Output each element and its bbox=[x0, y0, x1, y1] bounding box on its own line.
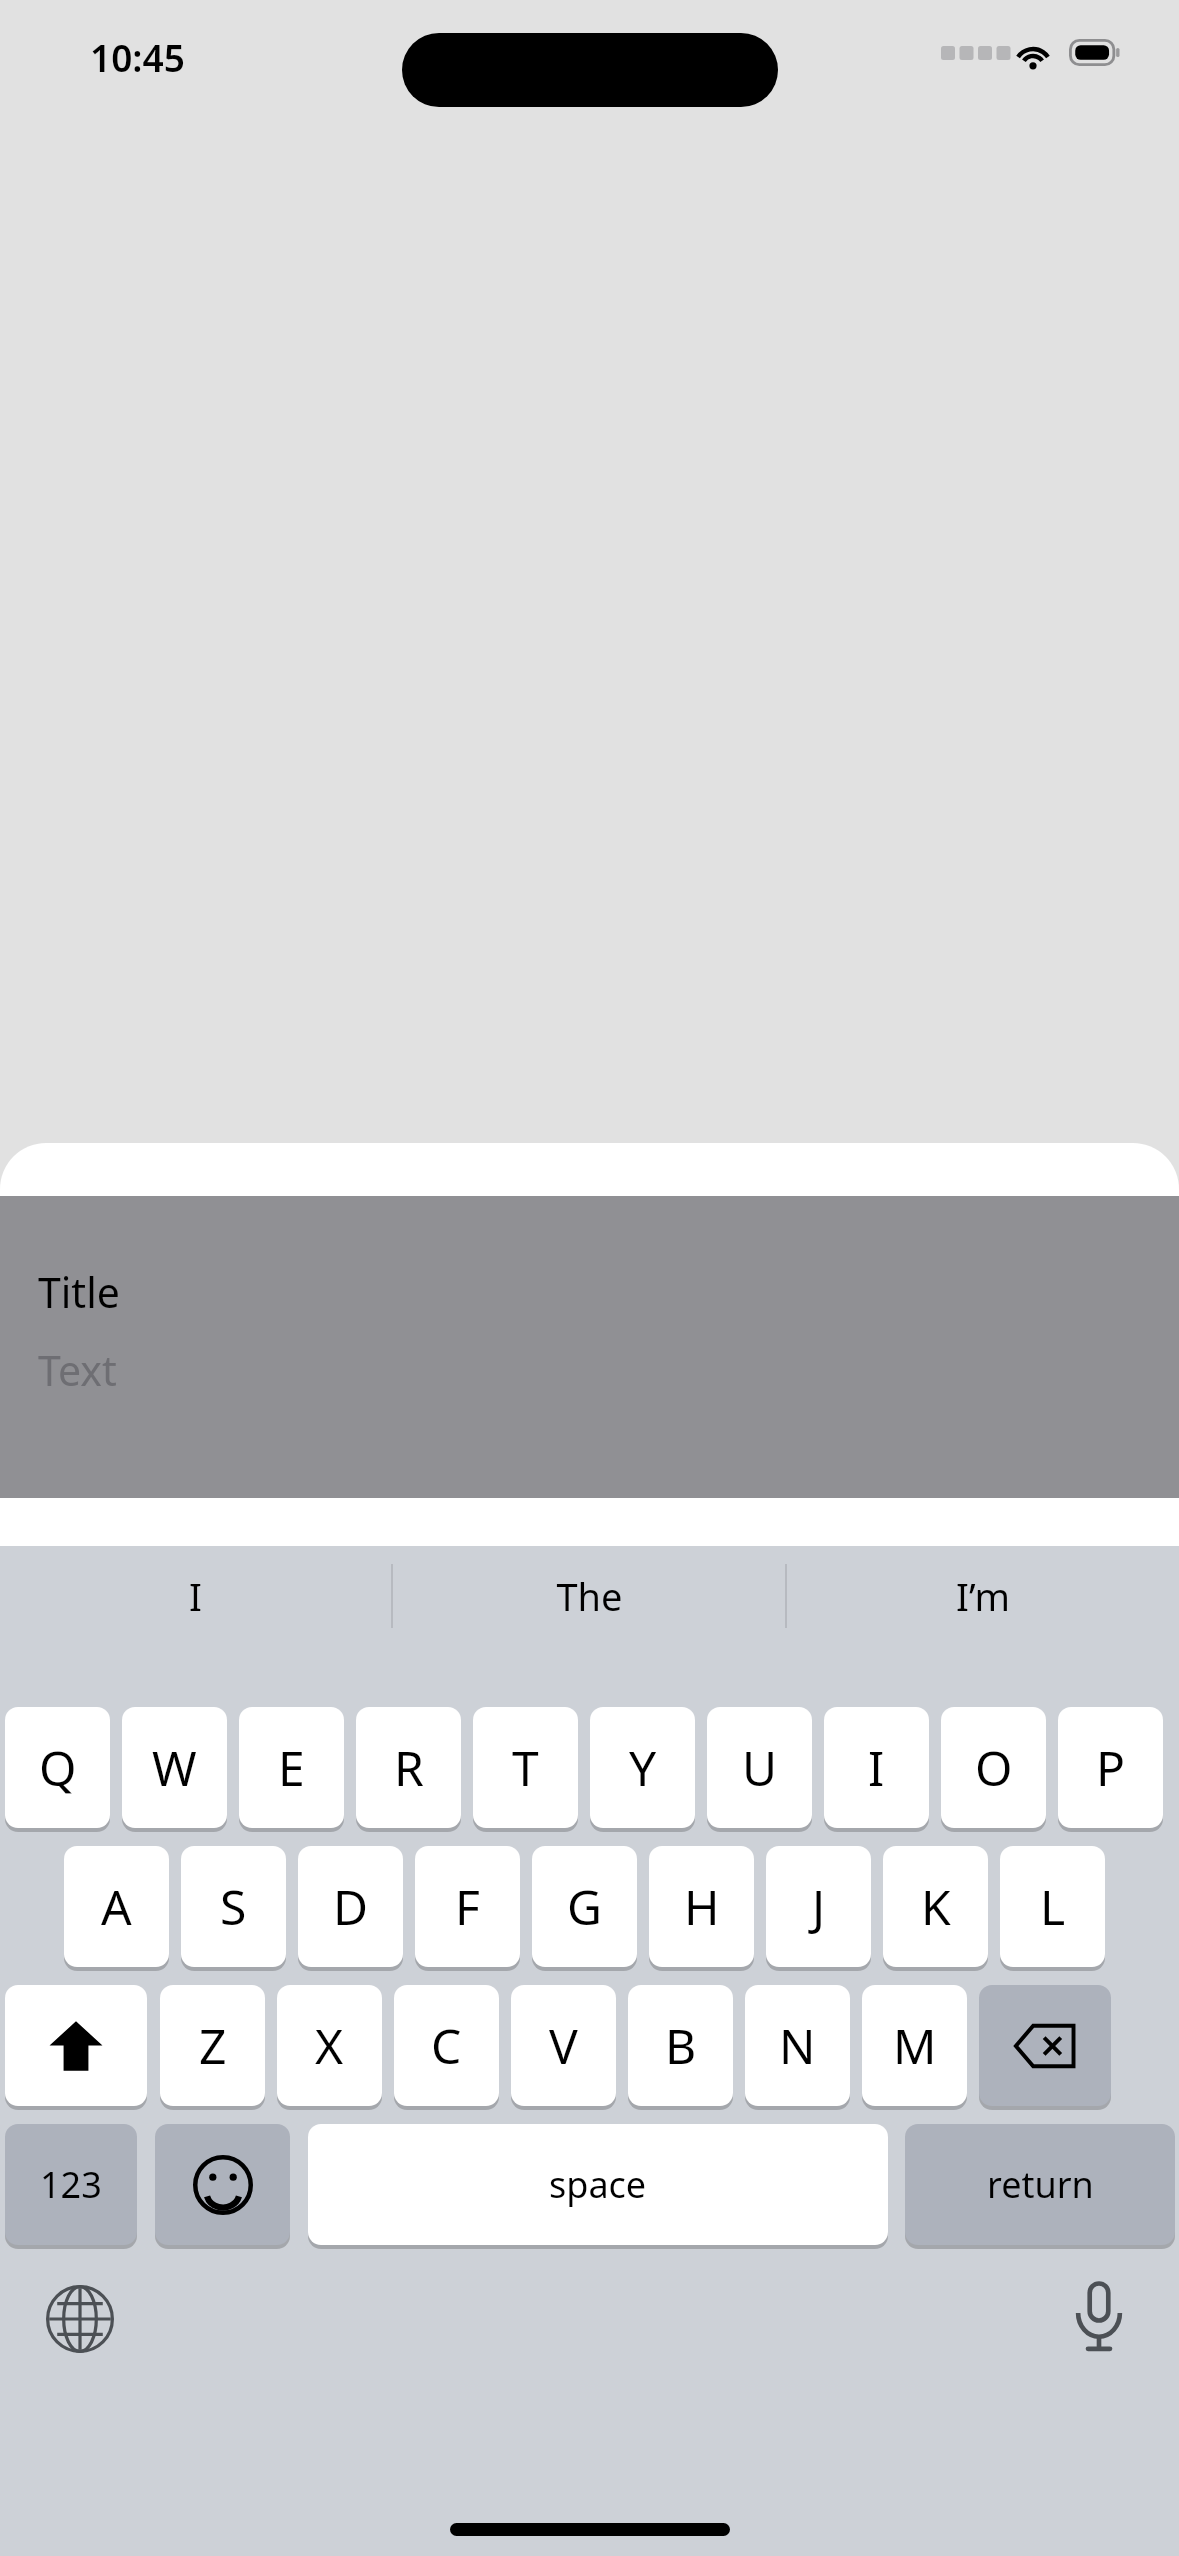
button[interactable]: Emoji bbox=[155, 2124, 290, 2245]
staticText: 10:45 bbox=[90, 32, 185, 82]
staticText: I’m bbox=[956, 1570, 1010, 1622]
button[interactable]: T bbox=[473, 1707, 578, 1828]
staticText: N bbox=[779, 2013, 816, 2078]
button[interactable]: J bbox=[766, 1846, 871, 1967]
button[interactable]: S bbox=[181, 1846, 286, 1967]
button[interactable]: Y bbox=[590, 1707, 695, 1828]
staticText: B bbox=[665, 2013, 697, 2078]
button[interactable]: A bbox=[64, 1846, 169, 1967]
button[interactable]: N bbox=[745, 1985, 850, 2106]
button[interactable]: C bbox=[394, 1985, 499, 2106]
staticText: Q bbox=[39, 1735, 77, 1800]
staticText: R bbox=[394, 1735, 424, 1800]
staticText: Z bbox=[199, 2013, 227, 2078]
button[interactable]: return bbox=[905, 2124, 1175, 2245]
button[interactable]: O bbox=[941, 1707, 1046, 1828]
button[interactable]: R bbox=[356, 1707, 461, 1828]
button[interactable]: I bbox=[0, 1546, 391, 1646]
staticText: F bbox=[455, 1874, 480, 1939]
button[interactable]: D bbox=[298, 1846, 403, 1967]
button[interactable]: Dictate bbox=[1051, 2271, 1147, 2367]
staticText: E bbox=[278, 1735, 305, 1800]
staticText: D bbox=[333, 1874, 369, 1939]
button[interactable]: V bbox=[511, 1985, 616, 2106]
button[interactable]: X bbox=[277, 1985, 382, 2106]
staticText: J bbox=[812, 1874, 826, 1939]
staticText: C bbox=[431, 2013, 462, 2078]
staticText: Text bbox=[38, 1342, 117, 1398]
button[interactable]: Shift bbox=[5, 1985, 147, 2106]
staticText: M bbox=[893, 2013, 937, 2078]
staticText: K bbox=[921, 1874, 951, 1939]
staticText: Title bbox=[38, 1264, 120, 1320]
staticText: Y bbox=[629, 1735, 657, 1800]
button[interactable]: 123 bbox=[5, 2124, 137, 2245]
button[interactable]: Backspace bbox=[979, 1985, 1111, 2106]
button[interactable]: The bbox=[393, 1546, 785, 1646]
button[interactable]: K bbox=[883, 1846, 988, 1967]
button[interactable]: E bbox=[239, 1707, 344, 1828]
button[interactable]: M bbox=[862, 1985, 967, 2106]
staticText: A bbox=[101, 1874, 132, 1939]
staticText: space bbox=[549, 2160, 647, 2209]
staticText: U bbox=[742, 1735, 778, 1800]
button[interactable]: G bbox=[532, 1846, 637, 1967]
button[interactable]: I bbox=[824, 1707, 929, 1828]
button[interactable]: P bbox=[1058, 1707, 1163, 1828]
staticText: W bbox=[152, 1735, 197, 1800]
staticText: return bbox=[987, 2160, 1094, 2209]
button[interactable]: Switch keyboard language bbox=[32, 2271, 128, 2367]
staticText: S bbox=[220, 1874, 247, 1939]
staticText: P bbox=[1096, 1735, 1126, 1800]
staticText: T bbox=[512, 1735, 539, 1800]
staticText: The bbox=[556, 1570, 623, 1622]
staticText: G bbox=[567, 1874, 602, 1939]
staticText: 123 bbox=[40, 2160, 102, 2209]
staticText: O bbox=[975, 1735, 1013, 1800]
button[interactable]: Q bbox=[5, 1707, 110, 1828]
staticText: I bbox=[189, 1570, 202, 1622]
staticText: X bbox=[315, 2013, 344, 2078]
button[interactable]: space bbox=[308, 2124, 888, 2245]
staticText: H bbox=[684, 1874, 720, 1939]
button[interactable]: F bbox=[415, 1846, 520, 1967]
button[interactable]: I’m bbox=[787, 1546, 1179, 1646]
button[interactable]: Title bbox=[0, 1196, 1179, 1498]
staticText: L bbox=[1040, 1874, 1066, 1939]
button[interactable]: B bbox=[628, 1985, 733, 2106]
button[interactable]: U bbox=[707, 1707, 812, 1828]
button[interactable]: L bbox=[1000, 1846, 1105, 1967]
button[interactable]: Z bbox=[160, 1985, 265, 2106]
staticText: I bbox=[868, 1735, 885, 1800]
button[interactable]: W bbox=[122, 1707, 227, 1828]
button[interactable]: H bbox=[649, 1846, 754, 1967]
staticText: V bbox=[549, 2013, 578, 2078]
